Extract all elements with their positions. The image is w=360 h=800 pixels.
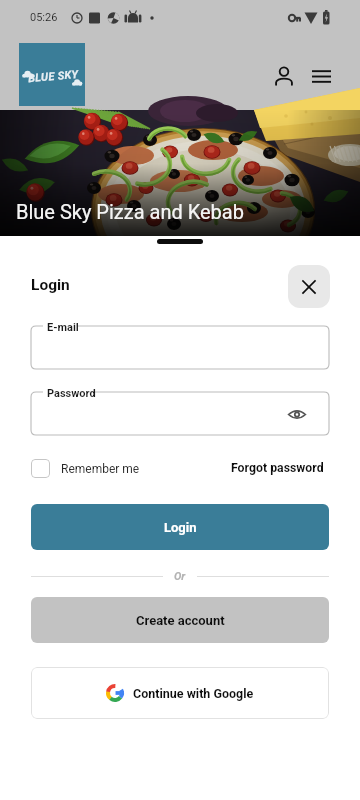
staticText: 05:26 [30, 11, 58, 24]
button[interactable]: Continue with Google [31, 667, 329, 719]
button[interactable]: Menu [305, 60, 337, 92]
button[interactable]: Create account [31, 597, 329, 643]
button[interactable]: Close [288, 265, 330, 308]
staticText: Password [47, 387, 96, 400]
button[interactable]: Remember me [31, 459, 140, 478]
staticText: Remember me [61, 462, 140, 476]
staticText: Forgot password [231, 461, 324, 475]
staticText: Create account [136, 613, 225, 628]
staticText: E-mail [47, 321, 79, 334]
staticText: BLUE SKY [27, 68, 79, 85]
staticText: Login [31, 276, 70, 294]
button[interactable]: Forgot password [231, 461, 329, 475]
button[interactable]: Show password [286, 403, 308, 425]
button[interactable]: Account [268, 60, 300, 92]
staticText: Continue with Google [133, 686, 254, 701]
staticText: Login [164, 520, 197, 535]
staticText: Or [174, 570, 186, 583]
staticText: Blue Sky Pizza and Kebab [16, 200, 244, 223]
button[interactable]: Login [31, 504, 329, 550]
